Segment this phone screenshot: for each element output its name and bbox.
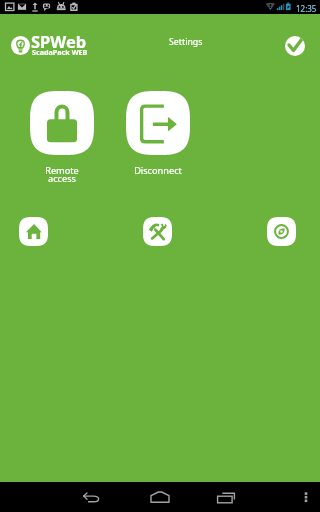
button[interactable]: Explore xyxy=(267,217,296,246)
button[interactable]: Home xyxy=(19,217,48,246)
staticText: 12:35 xyxy=(296,3,320,14)
button[interactable]: Confirm xyxy=(285,36,305,56)
staticText: Remote xyxy=(30,164,94,177)
button[interactable]: Remote access xyxy=(30,91,94,155)
button[interactable]: Settings xyxy=(164,33,208,51)
button[interactable]: Tools xyxy=(143,217,172,246)
staticText: Disconnect xyxy=(126,164,190,177)
staticText: ScadaPack WEB xyxy=(32,47,88,57)
button[interactable]: Disconnect xyxy=(126,91,190,155)
staticText: SPWeb xyxy=(31,30,87,52)
staticText: Settings xyxy=(169,36,203,48)
staticText: access xyxy=(30,172,94,185)
